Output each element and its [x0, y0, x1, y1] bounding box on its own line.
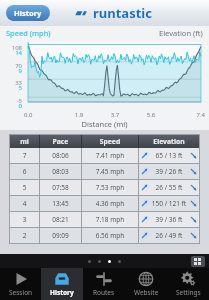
staticText: 08:06 [40, 151, 81, 160]
staticText: 26 / 49 ft [148, 231, 190, 240]
staticText: 2 [10, 231, 39, 240]
staticText: 7.41 mph [82, 151, 138, 160]
staticText: Website [134, 288, 159, 297]
button[interactable]: 4 [10, 196, 199, 211]
staticText: 13:45 [40, 199, 81, 208]
staticText: History [14, 8, 42, 18]
button[interactable]: Layout [191, 256, 205, 267]
staticText: Settings [176, 288, 201, 297]
button[interactable]: Session [0, 268, 41, 300]
staticText: Distance (mi) [0, 119, 209, 129]
staticText: 08:03 [40, 167, 81, 176]
staticText: 39 / 26 ft [148, 167, 190, 176]
staticText: 5 [0, 84, 22, 92]
staticText: 70 [0, 62, 22, 70]
button[interactable]: 3 [10, 212, 199, 227]
staticText: 33 [0, 79, 22, 87]
button[interactable]: Routes [83, 268, 125, 300]
staticText: 5.6 [133, 111, 169, 119]
button[interactable]: History [6, 5, 50, 21]
staticText: 08:21 [40, 215, 81, 224]
staticText: runtastic [93, 4, 152, 22]
button[interactable]: 7 [10, 148, 199, 163]
staticText: 5 [10, 183, 39, 192]
button[interactable]: History [41, 268, 83, 300]
staticText: 1.9 [61, 111, 97, 119]
button[interactable]: Website [125, 268, 167, 300]
staticText: Elevation [139, 137, 199, 146]
staticText: 07:58 [40, 183, 81, 192]
staticText: Speed [82, 137, 138, 146]
staticText: 6 [10, 167, 39, 176]
staticText: 14 [0, 49, 22, 57]
staticText: Elevation (ft) [159, 28, 203, 38]
staticText: Pace [40, 137, 81, 146]
staticText: -5 [0, 97, 22, 105]
staticText: Session [9, 288, 33, 297]
staticText: mi [10, 137, 39, 146]
staticText: 0 [0, 102, 22, 110]
staticText: 7.18 mph [82, 215, 138, 224]
button[interactable]: 5 [10, 180, 199, 195]
staticText: 0.0 [24, 111, 61, 119]
button[interactable]: 2 [10, 228, 199, 243]
staticText: 6.56 mph [82, 231, 138, 240]
staticText: 7.45 mph [82, 167, 138, 176]
staticText: 3 [10, 215, 39, 224]
button[interactable]: Settings [167, 268, 209, 300]
staticText: 09:09 [40, 231, 81, 240]
staticText: History [50, 288, 74, 297]
staticText: 7 [10, 151, 39, 160]
staticText: 150 / 121 ft [148, 199, 190, 208]
staticText: 4 [10, 199, 39, 208]
staticText: Routes [93, 288, 115, 297]
staticText: 7.4 [169, 111, 205, 119]
staticText: 4.36 mph [82, 199, 138, 208]
staticText: 39 / 36 ft [148, 215, 190, 224]
staticText: 26 / 55 ft [148, 183, 190, 192]
button[interactable]: 6 [10, 164, 199, 179]
staticText: Speed (mph) [6, 28, 51, 38]
staticText: 108 [0, 44, 22, 52]
staticText: 3.7 [97, 111, 133, 119]
staticText: 9 [0, 67, 22, 75]
staticText: 7.53 mph [82, 183, 138, 192]
staticText: 65 / 13 ft [148, 151, 190, 160]
